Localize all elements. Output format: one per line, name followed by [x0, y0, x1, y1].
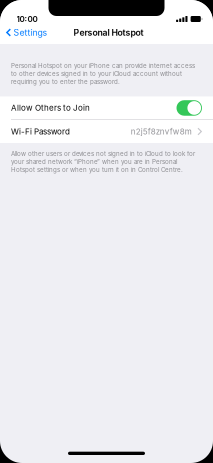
staticText: Wi-Fi Password: [11, 127, 70, 136]
button[interactable]: Allow Others to Join: [0, 96, 213, 119]
staticText: Allow other users or devices not signed …: [11, 150, 195, 173]
staticText: Personal Hotspot: [73, 27, 143, 38]
staticText: Settings: [13, 27, 47, 38]
staticText: n2j5f8znvfw8m: [131, 127, 192, 136]
staticText: Personal Hotspot on your iPhone can prov…: [11, 62, 195, 85]
button[interactable]: Wi-Fi Password: [0, 120, 213, 143]
staticText: 10:00: [16, 14, 37, 24]
staticText: Allow Others to Join: [11, 103, 90, 113]
button[interactable]: Settings: [0, 23, 53, 42]
